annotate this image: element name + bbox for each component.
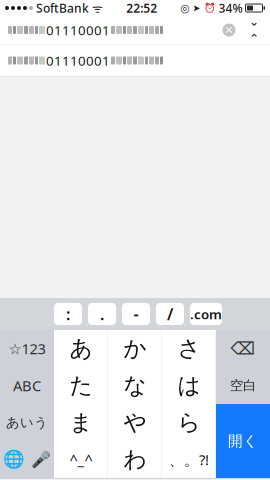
staticText: 01110001 xyxy=(46,21,110,39)
staticText: ⌃ xyxy=(249,31,259,45)
staticText: ◎ xyxy=(180,2,189,14)
staticText: あいう xyxy=(6,414,48,431)
button[interactable]: Collapse xyxy=(242,17,266,43)
staticText: ^_^ xyxy=(69,450,92,469)
staticText: わ xyxy=(123,446,146,473)
staticText: な xyxy=(123,372,146,399)
button[interactable]: .com xyxy=(190,303,222,325)
staticText: - xyxy=(133,303,138,325)
button[interactable]: わ xyxy=(108,441,162,478)
staticText: : xyxy=(66,303,70,325)
staticText: / xyxy=(167,303,173,325)
staticText: ら xyxy=(177,409,200,436)
button[interactable]: . xyxy=(88,303,116,325)
button[interactable]: ABC keyboard xyxy=(0,367,54,404)
button[interactable]: は xyxy=(162,367,216,404)
button[interactable]: 01110001 xyxy=(0,44,270,76)
staticText: . xyxy=(100,303,104,325)
staticText: ☆123 xyxy=(8,339,45,358)
button[interactable]: か xyxy=(108,330,162,367)
staticText: 、。?! xyxy=(169,450,209,469)
staticText: 01110001 xyxy=(46,52,110,69)
staticText: .com xyxy=(190,305,222,323)
button[interactable]: ま xyxy=(54,404,108,441)
staticText: や xyxy=(123,409,146,436)
staticText: ABC xyxy=(13,376,41,395)
button[interactable]: 開く xyxy=(216,404,270,478)
button[interactable]: た xyxy=(54,367,108,404)
staticText: ⌫ xyxy=(230,339,255,358)
staticText: ᯤ xyxy=(89,0,103,16)
button[interactable]: - xyxy=(122,303,150,325)
staticText: 空白 xyxy=(230,377,256,394)
staticText: SoftBank xyxy=(33,0,89,16)
staticText: た xyxy=(69,372,92,399)
button[interactable]: Next keyboard xyxy=(0,441,27,478)
staticText: 34% xyxy=(218,0,242,16)
staticText: は xyxy=(177,372,200,399)
staticText: さ xyxy=(177,335,200,362)
button[interactable]: や xyxy=(108,404,162,441)
button[interactable]: 、。?! xyxy=(162,441,216,478)
button[interactable]: ら xyxy=(162,404,216,441)
button[interactable]: Dictation xyxy=(27,441,54,478)
button[interactable]: さ xyxy=(162,330,216,367)
button[interactable]: / xyxy=(156,303,184,325)
button[interactable]: Space xyxy=(216,367,270,404)
button[interactable]: Numbers and symbols xyxy=(0,330,54,367)
button[interactable]: Clear text xyxy=(216,17,242,43)
staticText: 22:52 xyxy=(126,0,157,16)
staticText: ⌄ xyxy=(249,15,259,28)
staticText: か xyxy=(123,335,146,362)
button[interactable]: あ xyxy=(54,330,108,367)
staticText: 🌐 xyxy=(2,450,24,469)
button[interactable]: ^_^ xyxy=(54,441,108,478)
staticText: 🎤 xyxy=(30,450,50,469)
button[interactable]: Kana keyboard xyxy=(0,404,54,441)
button[interactable]: Delete xyxy=(216,330,270,367)
staticText: ま xyxy=(69,409,92,436)
button[interactable]: : xyxy=(54,303,82,325)
staticText: あ xyxy=(69,335,92,362)
staticText: ✕ xyxy=(224,24,233,36)
button[interactable]: な xyxy=(108,367,162,404)
staticText: ⏰ xyxy=(203,3,215,13)
staticText: 開く xyxy=(228,432,258,450)
staticText: ➤ xyxy=(192,3,200,13)
